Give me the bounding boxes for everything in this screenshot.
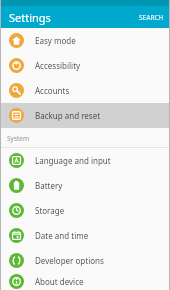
- other: Easy mode: [9, 33, 24, 48]
- button[interactable]: Easy mode: [0, 28, 170, 53]
- button[interactable]: Battery: [0, 173, 170, 198]
- other: Accounts: [9, 83, 24, 98]
- other: Accessibility: [9, 58, 24, 73]
- other: About device: [9, 274, 24, 289]
- staticText: Date and time: [35, 230, 89, 241]
- other: Date and time: [9, 228, 24, 243]
- other: Developer options: [9, 253, 24, 268]
- other: Storage: [9, 203, 24, 218]
- other: Battery: [9, 178, 24, 193]
- button[interactable]: Date and time: [0, 223, 170, 248]
- button[interactable]: Storage: [0, 198, 170, 223]
- staticText: Developer options: [35, 255, 104, 266]
- staticText: Settings: [9, 10, 51, 25]
- staticText: SEARCH: [139, 13, 164, 22]
- staticText: Accounts: [35, 85, 70, 96]
- button[interactable]: Language and input: [0, 148, 170, 173]
- button[interactable]: About device: [0, 273, 170, 290]
- staticText: Language and input: [35, 155, 111, 166]
- button[interactable]: SEARCH: [133, 9, 170, 26]
- staticText: About device: [35, 276, 84, 287]
- staticText: Backup and reset: [35, 110, 101, 121]
- staticText: Storage: [35, 205, 65, 216]
- staticText: Easy mode: [35, 35, 76, 46]
- button[interactable]: Accounts: [0, 78, 170, 103]
- other: Language and input: [9, 153, 24, 168]
- button[interactable]: Accessibility: [0, 53, 170, 78]
- button[interactable]: Backup and reset: [0, 103, 170, 128]
- staticText: System: [7, 134, 30, 143]
- other: Backup and reset: [9, 108, 24, 123]
- button[interactable]: Developer options: [0, 248, 170, 273]
- staticText: Battery: [35, 180, 63, 191]
- staticText: Accessibility: [35, 60, 81, 71]
